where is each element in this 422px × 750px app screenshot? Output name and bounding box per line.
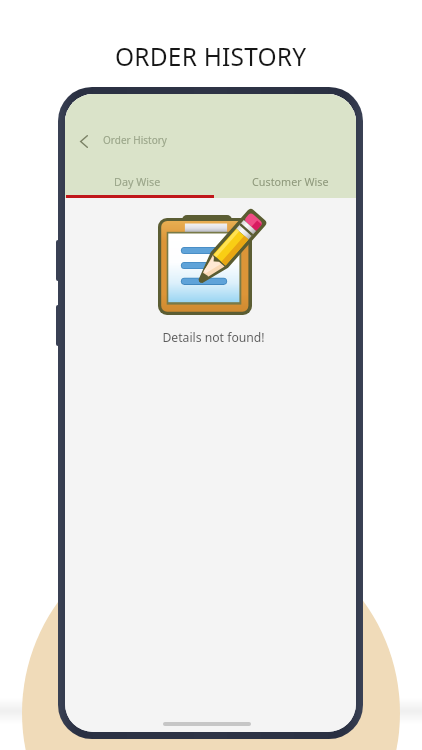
staticText: Details not found!	[162, 329, 265, 346]
staticText: ORDER HISTORY	[115, 40, 307, 73]
staticText: Day Wise	[114, 174, 161, 189]
staticText: Customer Wise	[252, 174, 329, 189]
staticText: Order History	[103, 133, 167, 147]
button[interactable]: Customer Wise	[210, 168, 356, 194]
button[interactable]: Day Wise	[65, 168, 210, 194]
button[interactable]: Back	[70, 127, 98, 155]
